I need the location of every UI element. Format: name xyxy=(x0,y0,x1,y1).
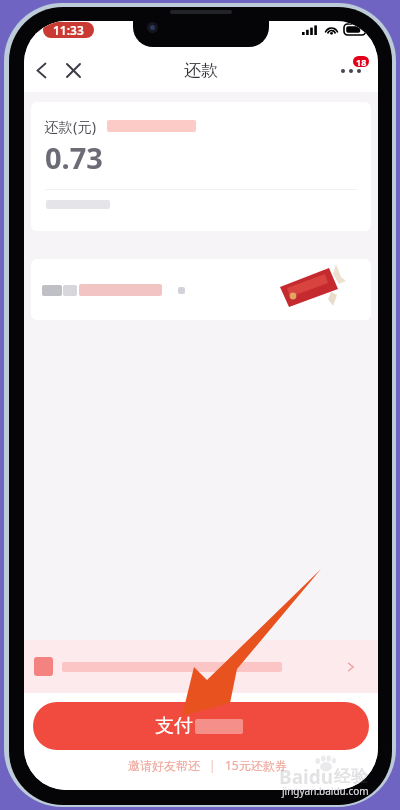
button[interactable]: 15元还款券 xyxy=(225,757,287,773)
staticText: 18 xyxy=(356,56,367,67)
staticText: 0.73 xyxy=(45,138,103,177)
staticText: 还款(元) xyxy=(44,116,97,136)
button[interactable] xyxy=(24,640,378,693)
button[interactable]: Close xyxy=(57,54,89,86)
button[interactable]: 邀请好友帮还 xyxy=(128,758,200,773)
button[interactable]: Back xyxy=(25,54,57,86)
staticText: | xyxy=(209,757,216,773)
staticText: 支付 xyxy=(155,714,193,738)
button[interactable]: 支付 xyxy=(33,702,369,750)
button[interactable]: More options xyxy=(326,50,370,90)
staticText: jingyan.baidu.com xyxy=(282,784,369,798)
button[interactable] xyxy=(31,259,371,320)
staticText: 11:33 xyxy=(53,22,84,38)
staticText: 经验 xyxy=(334,766,368,787)
staticText: Baidu xyxy=(279,764,334,790)
staticText: 还款 xyxy=(184,60,218,81)
